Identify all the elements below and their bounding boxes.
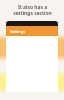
staticText: Settings (10, 29, 26, 34)
staticText: It also has a settings section (13, 4, 52, 17)
button[interactable]: Settings (6, 26, 58, 36)
